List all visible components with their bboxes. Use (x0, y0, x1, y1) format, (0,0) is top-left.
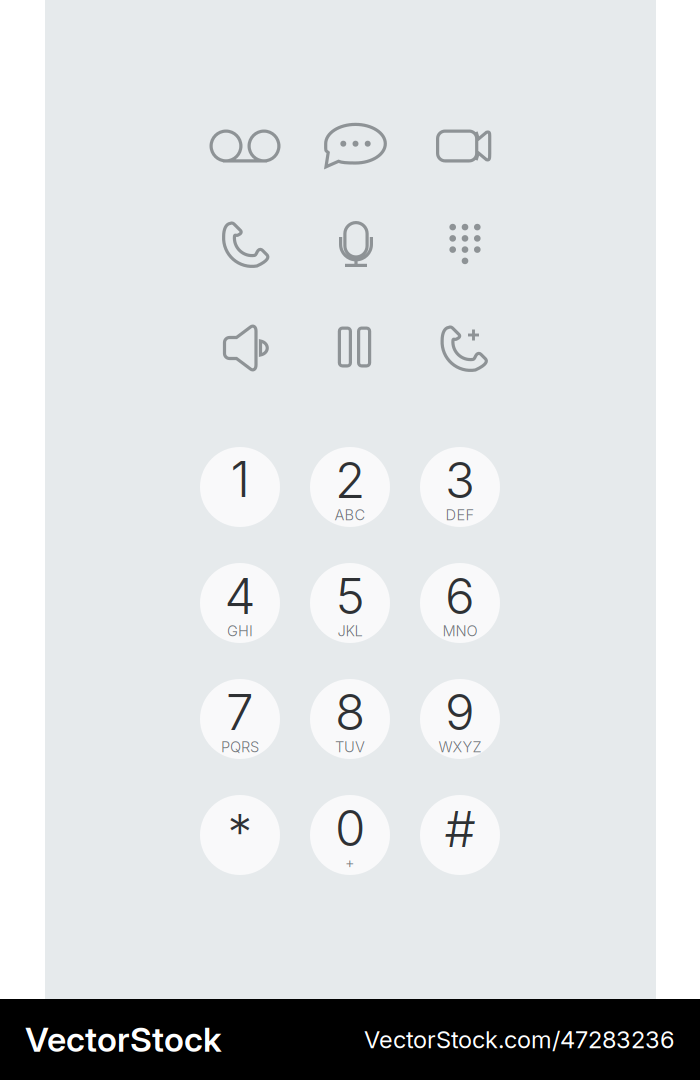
staticText: DEF (445, 506, 474, 524)
button[interactable]: Call (199, 198, 295, 294)
button[interactable]: 3 (420, 447, 500, 527)
button[interactable]: Speaker (196, 300, 292, 396)
button[interactable]: 4 (200, 563, 280, 643)
staticText: 9 (445, 682, 475, 742)
button[interactable]: FaceTime (416, 98, 512, 194)
button[interactable]: 9 (420, 679, 500, 759)
staticText: 6 (445, 566, 475, 626)
button[interactable]: Messages (307, 97, 403, 193)
staticText: MNO (442, 622, 477, 640)
staticText: 1 (230, 449, 249, 509)
staticText: ABC (334, 506, 365, 524)
staticText: # (444, 799, 475, 859)
staticText: 0 (335, 798, 365, 858)
button[interactable]: Keypad (417, 196, 513, 292)
staticText: * (227, 802, 252, 862)
staticText: 8 (335, 682, 365, 742)
staticText: VectorStock.com/47283236 (364, 1025, 675, 1054)
staticText: PQRS (221, 738, 259, 756)
button[interactable]: 5 (310, 563, 390, 643)
staticText: 4 (224, 566, 255, 626)
button[interactable]: Mute (308, 196, 404, 292)
button[interactable]: 1 (200, 447, 280, 527)
staticText: 3 (445, 450, 475, 510)
button[interactable]: * (200, 795, 280, 875)
button[interactable]: 8 (310, 679, 390, 759)
staticText: JKL (337, 622, 362, 640)
button[interactable]: Add call (418, 302, 514, 398)
staticText: 5 (335, 566, 364, 626)
button[interactable]: 0 (310, 795, 390, 875)
button[interactable]: 2 (310, 447, 390, 527)
staticText: TUV (335, 738, 365, 756)
staticText: GHI (227, 622, 253, 640)
button[interactable]: Voicemail (197, 98, 293, 194)
staticText: VectorStock (25, 1019, 222, 1060)
button[interactable]: 7 (200, 679, 280, 759)
button[interactable]: # (420, 795, 500, 875)
staticText: WXYZ (438, 738, 481, 756)
button[interactable]: 6 (420, 563, 500, 643)
staticText: 2 (335, 450, 365, 510)
staticText: 7 (226, 682, 254, 742)
button[interactable]: Hold (306, 299, 402, 395)
staticText: + (345, 854, 355, 872)
